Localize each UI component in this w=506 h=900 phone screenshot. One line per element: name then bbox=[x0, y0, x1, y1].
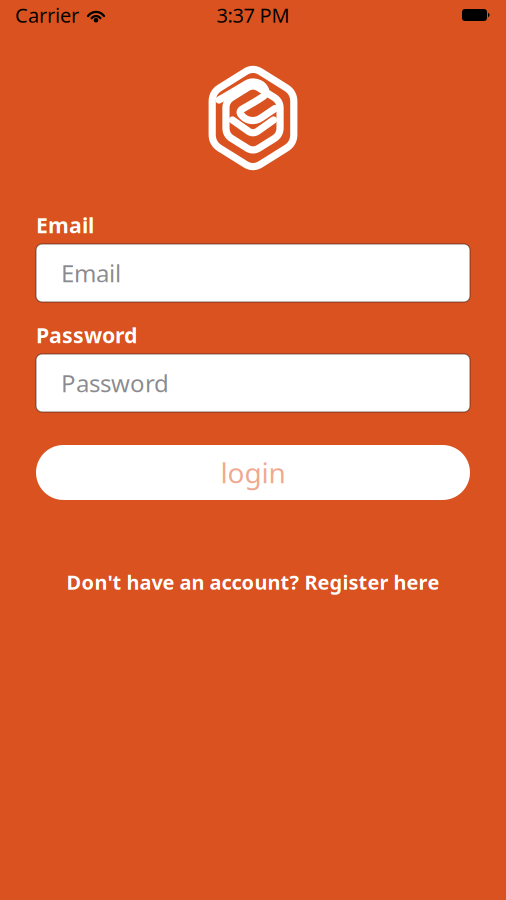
button[interactable]: Don't have an account? Register here bbox=[36, 572, 470, 592]
staticText: Email bbox=[36, 211, 94, 239]
staticText: Email bbox=[61, 257, 121, 289]
staticText: login bbox=[220, 454, 285, 491]
staticText: Password bbox=[36, 321, 137, 349]
staticText: Password bbox=[61, 367, 169, 399]
button[interactable]: login bbox=[36, 445, 470, 500]
staticText: Don't have an account? Register here bbox=[66, 569, 439, 595]
staticText: 3:37 PM bbox=[216, 2, 289, 28]
staticText: Carrier bbox=[15, 2, 79, 28]
